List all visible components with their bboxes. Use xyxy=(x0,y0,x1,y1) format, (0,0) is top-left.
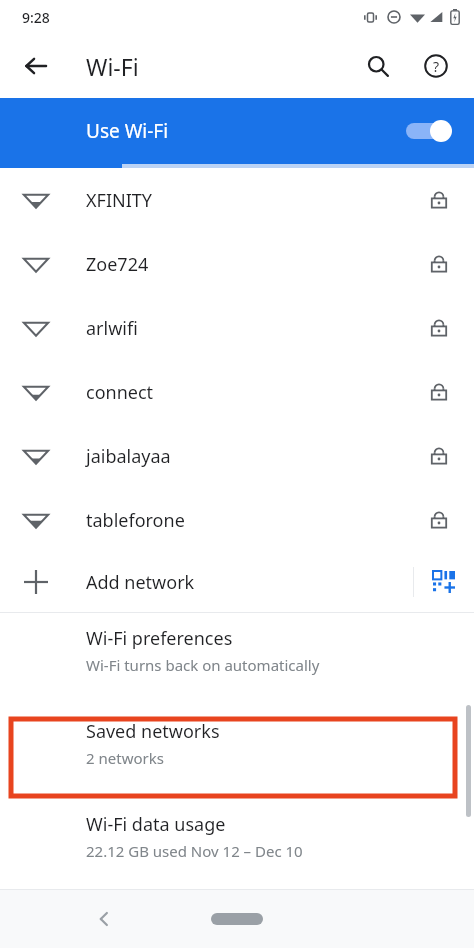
staticText: Add network xyxy=(86,570,195,595)
staticText: ? xyxy=(433,57,440,76)
staticText: XFINITY xyxy=(86,188,152,213)
staticText: tableforone xyxy=(86,508,185,533)
staticText: connect xyxy=(86,380,154,405)
staticText: jaibalayaa xyxy=(86,444,171,469)
button[interactable]: Home xyxy=(211,913,263,925)
button[interactable]: Use Wi-Fi xyxy=(0,98,474,164)
staticText: 9:28 xyxy=(22,8,50,27)
button[interactable]: Help xyxy=(414,44,458,88)
button[interactable]: connect xyxy=(0,360,474,424)
staticText: 2 networks xyxy=(86,748,164,768)
button[interactable]: Back xyxy=(84,899,124,939)
staticText: Use Wi-Fi xyxy=(86,118,169,144)
button[interactable]: Zoe724 xyxy=(0,232,474,296)
button[interactable]: Search xyxy=(356,44,400,88)
button[interactable]: XFINITY xyxy=(0,168,474,232)
button[interactable]: arlwifi xyxy=(0,296,474,360)
button[interactable]: Add network xyxy=(0,552,413,612)
staticText: Wi-Fi xyxy=(86,51,139,82)
button[interactable]: Wi-Fi preferences xyxy=(0,613,474,688)
staticText: Wi-Fi turns back on automatically xyxy=(86,655,320,675)
staticText: arlwifi xyxy=(86,316,138,341)
staticText: Wi-Fi preferences xyxy=(86,626,233,651)
button[interactable]: Back xyxy=(14,44,58,88)
button[interactable]: Wi-Fi data usage xyxy=(0,799,474,874)
staticText: 22.12 GB used Nov 12 – Dec 10 xyxy=(86,841,303,861)
button[interactable]: tableforone xyxy=(0,488,474,552)
button[interactable]: Saved networks xyxy=(0,706,474,781)
button[interactable]: Scan QR code xyxy=(414,552,474,612)
button[interactable]: jaibalayaa xyxy=(0,424,474,488)
staticText: Saved networks xyxy=(86,719,220,744)
staticText: Wi-Fi data usage xyxy=(86,812,226,837)
staticText: Zoe724 xyxy=(86,252,149,277)
